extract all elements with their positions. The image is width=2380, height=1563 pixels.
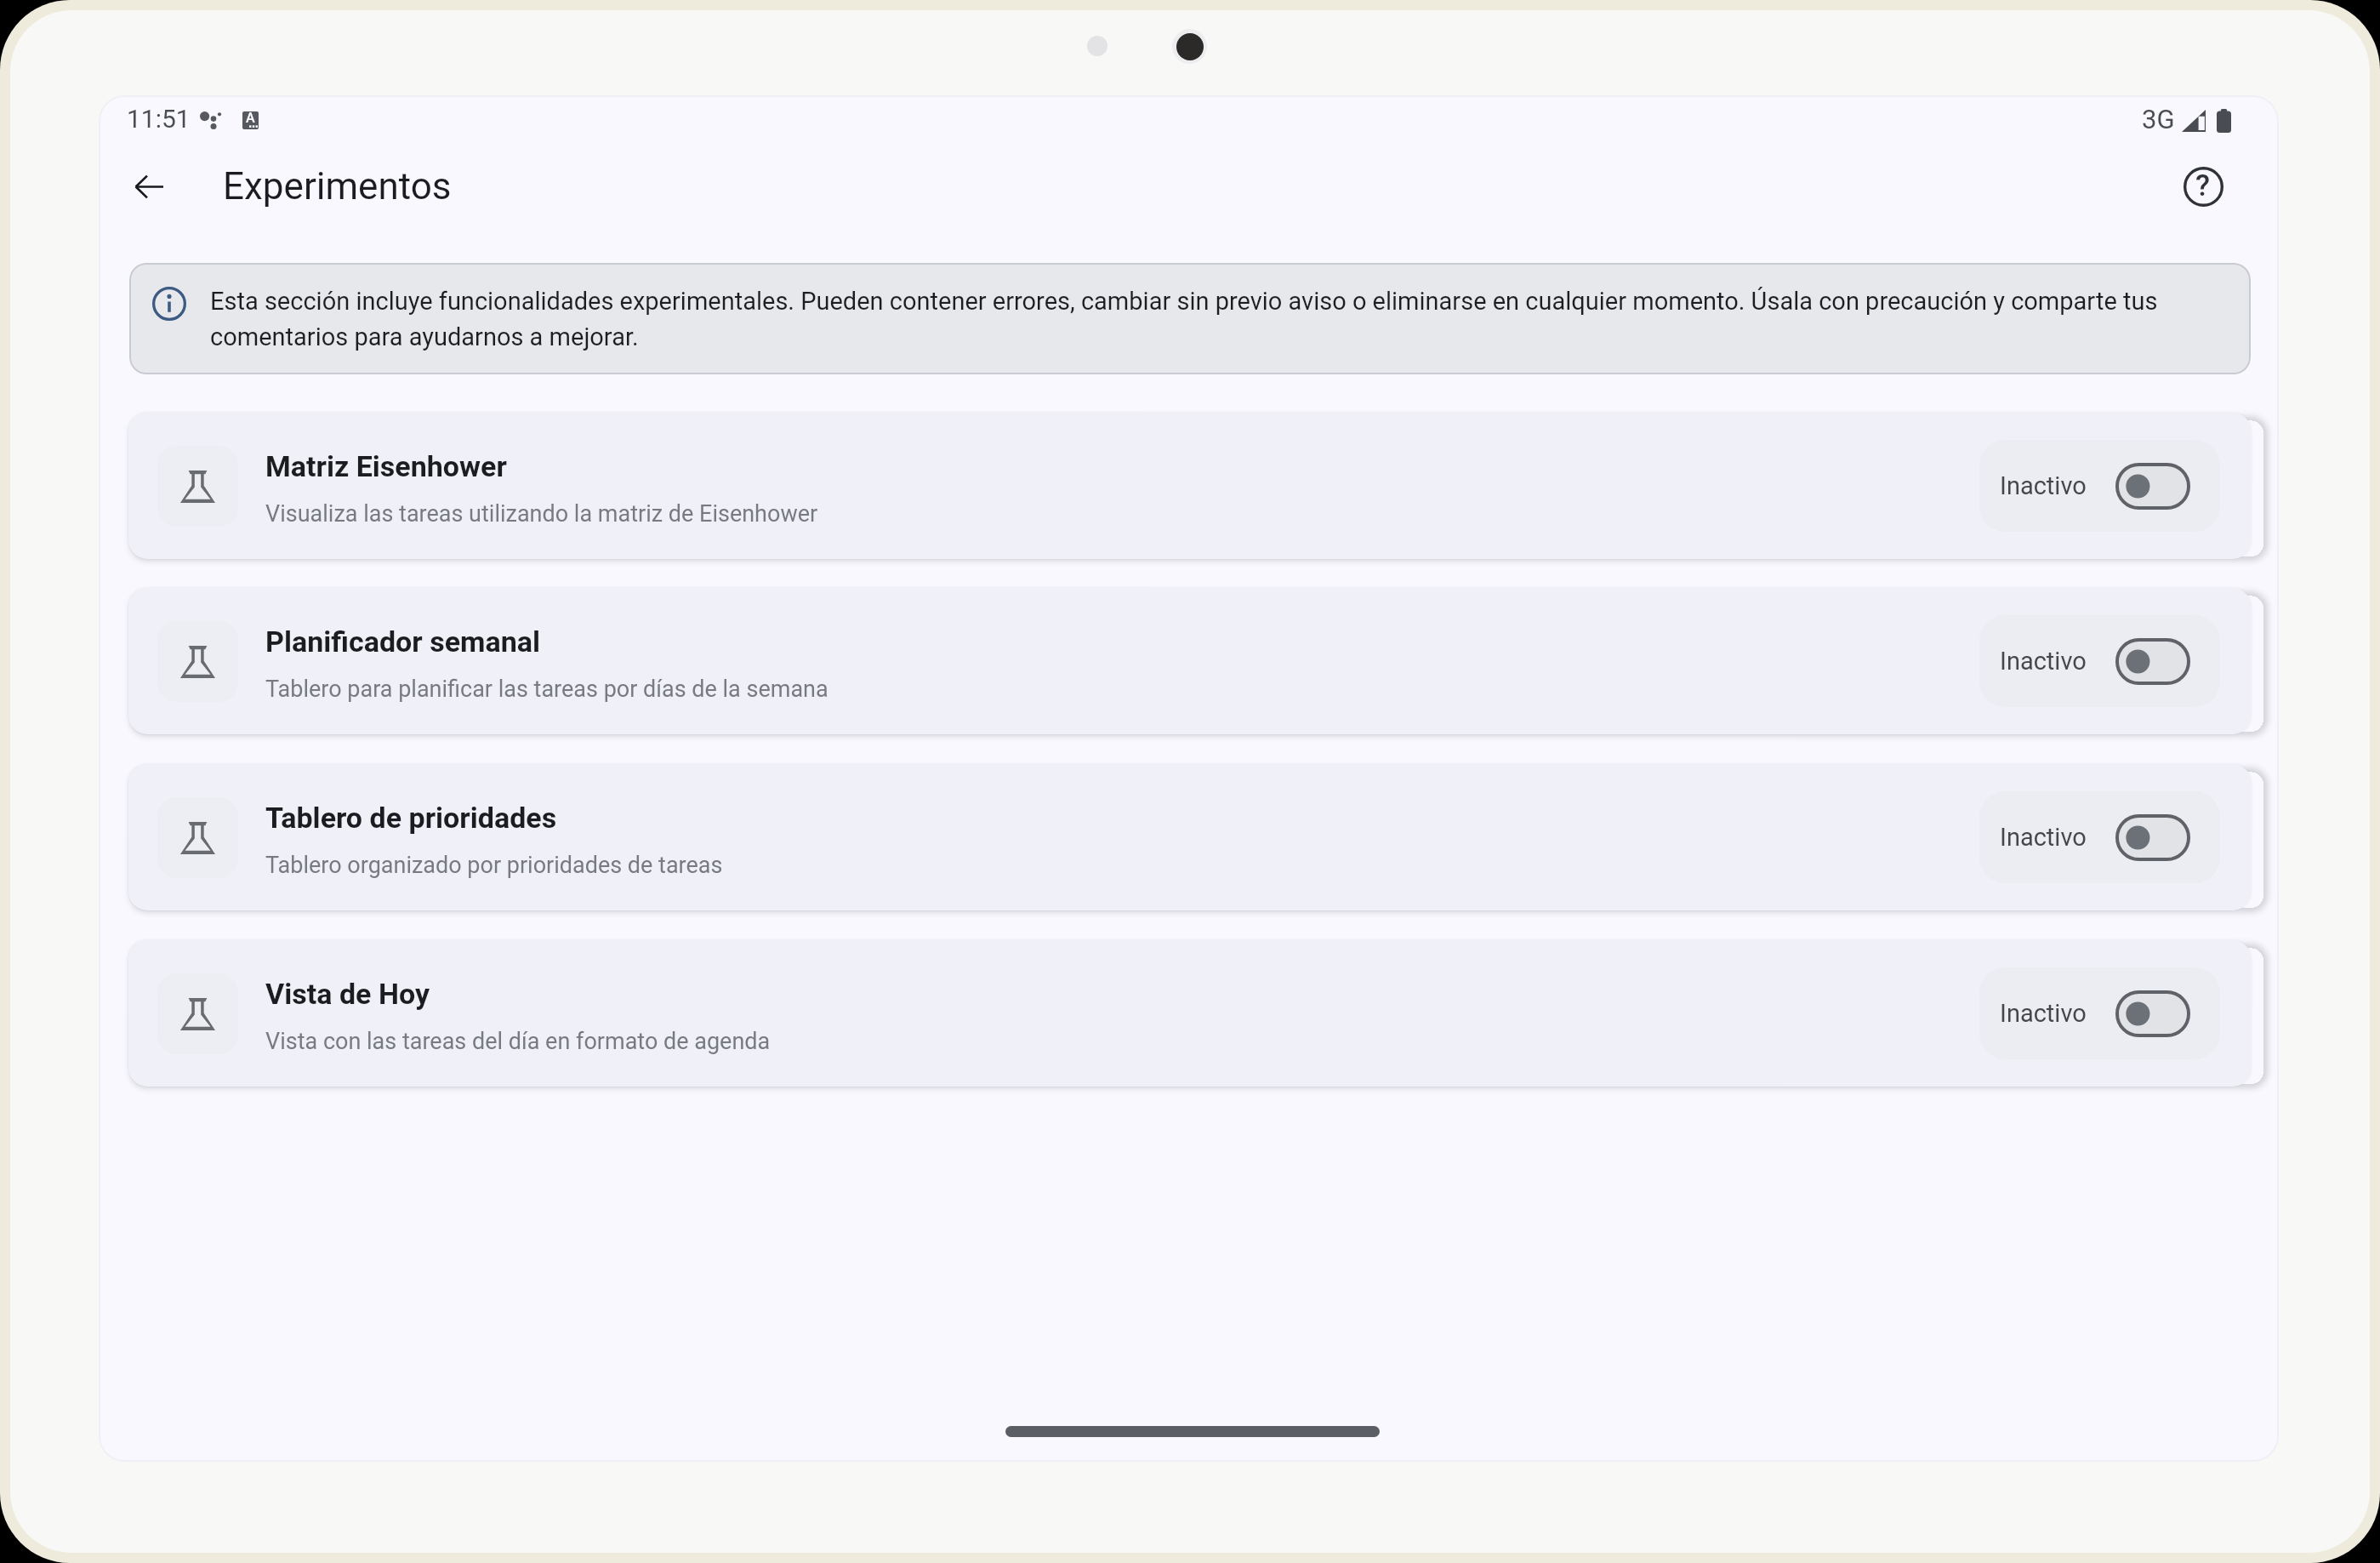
staticText: Tablero para planificar las tareas por d… [265, 676, 828, 703]
button[interactable]: Back [122, 159, 176, 214]
staticText: 11:51 [127, 104, 191, 134]
staticText: Visualiza las tareas utilizando la matri… [265, 500, 818, 528]
staticText: Inactivo [2000, 647, 2087, 676]
button[interactable]: Inactivo [1979, 967, 2220, 1059]
button[interactable]: Tablero de prioridades [128, 764, 2252, 910]
button[interactable]: Help [2176, 159, 2230, 214]
staticText: A [246, 111, 255, 126]
button[interactable]: Inactivo [1979, 791, 2220, 883]
staticText: 3G [2142, 104, 2175, 134]
staticText: Matriz Eisenhower [265, 449, 507, 483]
staticText: ? [2195, 168, 2211, 203]
staticText: Inactivo [2000, 999, 2087, 1028]
button[interactable]: Matriz Eisenhower [128, 413, 2252, 559]
button[interactable]: Vista de Hoy [128, 940, 2252, 1087]
staticText: Inactivo [2000, 823, 2087, 852]
staticText: Vista de Hoy [265, 977, 430, 1011]
staticText: Planificador semanal [265, 625, 541, 659]
staticText: Inactivo [2000, 471, 2087, 500]
staticText: Experimentos [223, 164, 452, 208]
button[interactable]: Inactivo [1979, 440, 2220, 532]
staticText: Tablero organizado por prioridades de ta… [265, 852, 723, 879]
button[interactable]: Inactivo [1979, 615, 2220, 707]
staticText: Tablero de prioridades [265, 801, 557, 835]
button[interactable]: Planificador semanal [128, 588, 2252, 734]
staticText: Vista con las tareas del día en formato … [265, 1028, 771, 1055]
staticText: Esta sección incluye funcionalidades exp… [210, 287, 2239, 351]
